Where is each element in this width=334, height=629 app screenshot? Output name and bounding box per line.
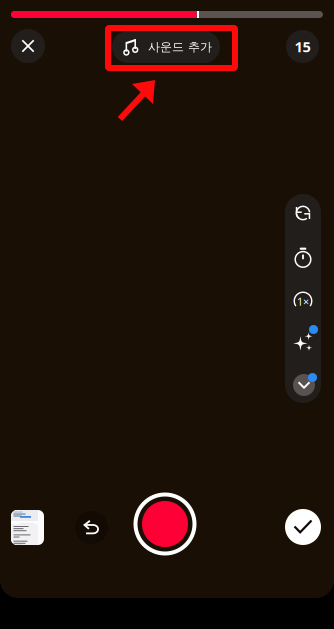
button[interactable]: Timer [288, 240, 318, 270]
button[interactable]: 15 seconds [286, 30, 319, 63]
button[interactable]: Close [11, 29, 45, 63]
staticText: 1× [297, 294, 309, 309]
button[interactable]: Done [284, 508, 322, 546]
button[interactable]: 사운드 추가 [112, 31, 220, 63]
button[interactable]: Playback speed [288, 286, 318, 316]
button[interactable]: Undo [73, 509, 110, 546]
button[interactable]: Effects [288, 320, 318, 350]
staticText: 15 [294, 37, 310, 56]
button[interactable]: Record [133, 492, 197, 556]
staticText: 사운드 추가 [148, 40, 212, 54]
button[interactable]: Open gallery [7, 506, 48, 549]
button[interactable]: Flip camera [288, 198, 318, 228]
button[interactable]: Show more options [288, 368, 318, 398]
